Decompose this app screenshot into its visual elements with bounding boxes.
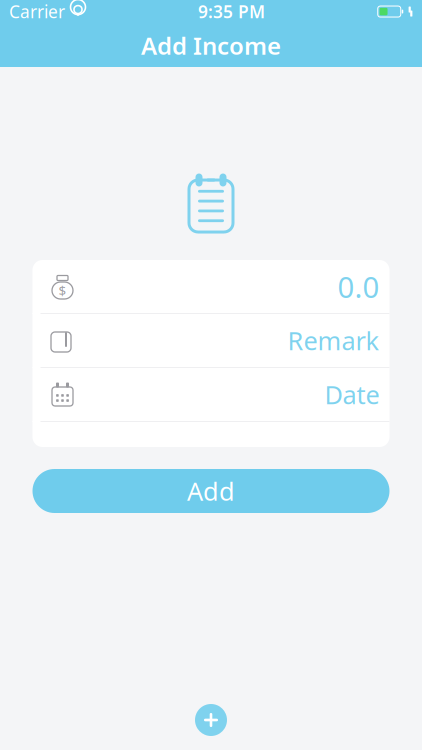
staticText: 0.0 — [337, 267, 379, 306]
staticText: Date — [324, 378, 379, 411]
staticText: Add — [187, 474, 235, 508]
button[interactable]: Close — [189, 698, 233, 742]
staticText: 9:35 PM — [198, 0, 265, 23]
staticText: Add Income — [141, 30, 281, 61]
staticText: $ — [58, 282, 66, 299]
button[interactable]: Add — [32, 469, 389, 513]
button[interactable]: Date — [32, 368, 389, 421]
button[interactable]: $ — [32, 260, 389, 313]
staticText: Remark — [287, 324, 379, 357]
button[interactable]: Remark — [32, 314, 389, 367]
staticText: Carrier — [9, 0, 65, 23]
